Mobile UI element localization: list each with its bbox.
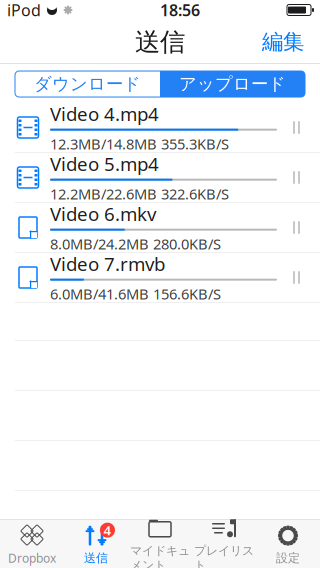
staticText: 送信 <box>135 26 185 57</box>
staticText: プレイリスト <box>194 543 254 568</box>
button[interactable]: 設定 <box>256 520 320 568</box>
button[interactable]: 4 <box>64 520 128 568</box>
button[interactable]: Video 6.mkv <box>0 203 320 253</box>
staticText: 設定 <box>276 551 300 565</box>
staticText: 送信 <box>84 551 108 565</box>
button[interactable]: ダウンロード <box>15 71 160 97</box>
button[interactable]: 編集 <box>254 23 312 61</box>
staticText: 18:56 <box>160 0 200 21</box>
staticText: マイドキュメント <box>130 543 190 568</box>
staticText: アップロード <box>179 73 286 95</box>
staticText: 4 <box>103 521 111 539</box>
button[interactable]: Video 5.mp4 <box>0 153 320 203</box>
staticText: 12.2MB/22.6MB 322.6KB/S <box>50 184 229 204</box>
staticText: ダウンロード <box>34 73 141 95</box>
staticText: Video 5.mp4 <box>50 151 159 176</box>
staticText: 12.3MB/14.8MB 355.3KB/S <box>50 134 229 154</box>
staticText: 6.0MB/41.6MB 156.6KB/S <box>50 284 221 304</box>
staticText: Video 7.rmvb <box>50 251 165 276</box>
button[interactable]: マイドキュメント <box>128 520 192 568</box>
button[interactable]: Dropbox <box>0 520 64 568</box>
button[interactable]: Video 7.rmvb <box>0 253 320 303</box>
staticText: Video 4.mp4 <box>50 101 159 126</box>
staticText: 編集 <box>262 29 304 55</box>
button[interactable]: プレイリスト <box>192 520 256 568</box>
staticText: 8.0MB/24.2MB 280.0KB/S <box>50 234 221 254</box>
staticText: Video 6.mkv <box>50 201 156 226</box>
staticText: iPod <box>7 0 41 21</box>
button[interactable]: アップロード <box>160 71 305 97</box>
button[interactable]: Video 4.mp4 <box>0 103 320 153</box>
staticText: Dropbox <box>8 550 56 566</box>
